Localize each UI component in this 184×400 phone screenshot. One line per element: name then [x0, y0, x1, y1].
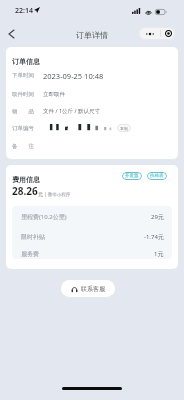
staticText: 价格表 — [150, 173, 164, 179]
staticText: 订单详情 — [76, 30, 108, 40]
staticText: 28.26 — [12, 184, 38, 198]
staticText: 29元 — [151, 213, 164, 221]
staticText: 取件时间 — [12, 91, 34, 98]
staticText: 1元 — [154, 250, 164, 258]
staticText: 服务费 — [21, 250, 39, 258]
staticText: 订单编号 — [12, 125, 34, 132]
staticText: 费用信息 — [12, 175, 40, 184]
staticText: 立即取件 — [43, 91, 65, 98]
staticText: -1.74元 — [144, 233, 164, 241]
button[interactable]: 开发票 — [122, 172, 142, 180]
staticText: 订单信息 — [12, 57, 40, 66]
staticText: 下单时间 — [12, 72, 34, 79]
staticText: 文件 / 1公斤 / 默认尺寸 — [43, 107, 100, 115]
staticText: 里程费(10.2公里) — [21, 213, 67, 221]
button[interactable]: 价格表 — [147, 172, 167, 180]
staticText: 22:14 — [15, 6, 33, 16]
staticText: 开发票 — [125, 173, 139, 179]
staticText: 联系客服 — [81, 285, 105, 293]
staticText: 限时补贴 — [21, 233, 45, 241]
staticText: | 微信小程序 — [43, 191, 71, 197]
button[interactable]: Back — [2, 25, 20, 42]
button[interactable]: 联系客服 — [61, 280, 115, 297]
button[interactable]: More options — [139, 27, 160, 40]
staticText: 物 品 — [12, 107, 34, 115]
staticText: 2023-09-25 10:48 — [43, 71, 104, 81]
staticText: 备 注 — [12, 142, 34, 150]
staticText: 复制 — [120, 126, 128, 131]
staticText: 元 — [38, 191, 43, 197]
button[interactable]: Close mini program — [161, 27, 175, 40]
button[interactable]: 复制 — [117, 124, 131, 132]
